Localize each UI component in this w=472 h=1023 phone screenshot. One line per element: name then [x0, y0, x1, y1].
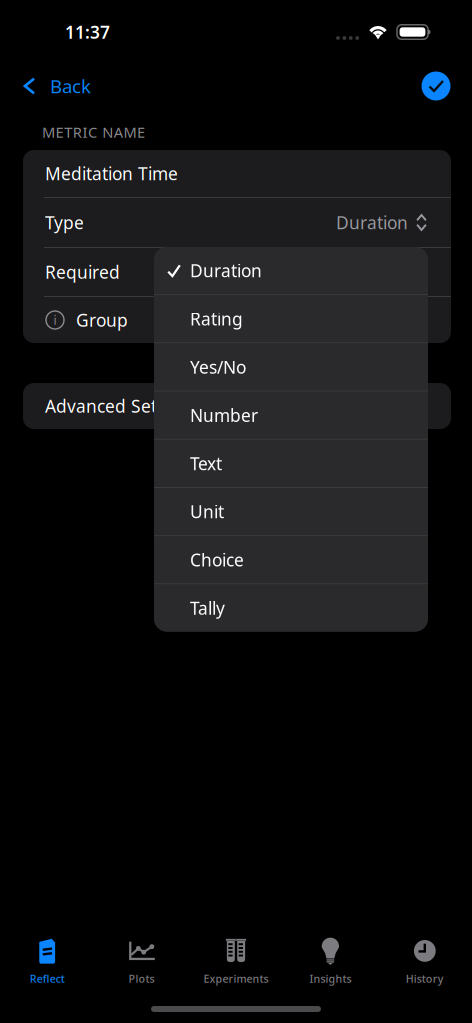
staticText: History: [406, 971, 444, 986]
staticText: Back: [50, 74, 91, 98]
staticText: Yes/No: [190, 355, 246, 378]
staticText: Choice: [190, 548, 244, 571]
staticText: Duration: [190, 259, 262, 282]
button[interactable]: Yes/No: [154, 343, 428, 391]
button[interactable]: Back: [0, 64, 103, 108]
button[interactable]: Plots: [94, 935, 189, 987]
button[interactable]: Advanced Settings: [23, 383, 451, 429]
staticText: METRIC NAME: [42, 122, 145, 142]
staticText: Text: [190, 452, 222, 475]
staticText: Tally: [190, 596, 225, 619]
staticText: Number: [190, 404, 258, 427]
staticText: Advanced Settings: [45, 394, 197, 417]
staticText: Type: [45, 211, 84, 234]
button[interactable]: Type: [23, 198, 451, 247]
button[interactable]: Reflect: [0, 935, 94, 987]
staticText: Duration: [336, 211, 408, 234]
button[interactable]: Choice: [154, 536, 428, 583]
staticText: Reflect: [30, 971, 65, 986]
button[interactable]: Save: [414, 64, 458, 108]
button[interactable]: Unit: [154, 488, 428, 535]
button[interactable]: Insights: [283, 935, 378, 987]
staticText: Required: [45, 260, 120, 283]
staticText: Rating: [190, 307, 243, 330]
staticText: 11:37: [65, 20, 110, 43]
staticText: Meditation Time: [45, 162, 178, 185]
button[interactable]: Number: [154, 392, 428, 439]
staticText: Experiments: [203, 971, 268, 986]
button[interactable]: Text: [154, 440, 428, 487]
button[interactable]: Tally: [154, 584, 428, 632]
button[interactable]: Rating: [154, 295, 428, 342]
staticText: Plots: [129, 971, 155, 986]
button[interactable]: Experiments: [189, 935, 283, 987]
button[interactable]: History: [378, 935, 472, 987]
staticText: i: [53, 312, 56, 328]
staticText: Insights: [309, 971, 351, 986]
button[interactable]: Duration: [154, 247, 428, 294]
staticText: Group: [76, 308, 128, 331]
staticText: Unit: [190, 500, 224, 523]
